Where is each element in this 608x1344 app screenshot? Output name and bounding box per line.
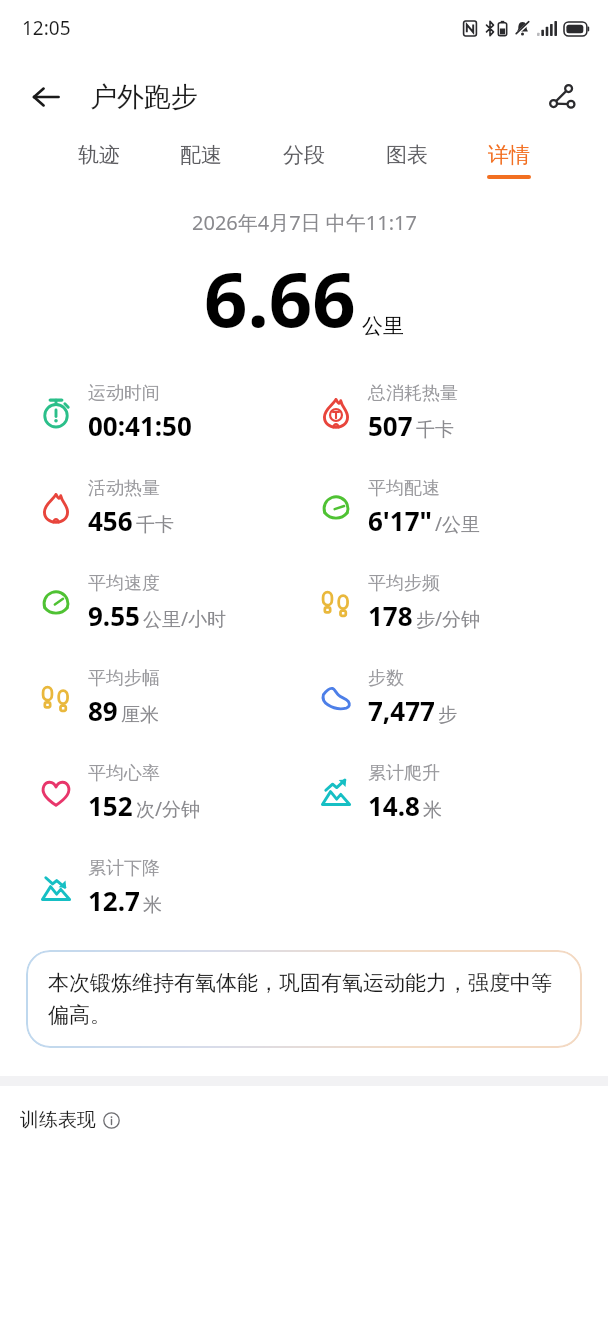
staticText: 户外跑步	[90, 80, 198, 114]
button[interactable]: Back	[26, 77, 66, 117]
staticText: 米	[423, 798, 442, 822]
staticText: 公里	[362, 313, 404, 339]
staticText: 89	[88, 693, 118, 728]
staticText: 178	[368, 598, 413, 633]
staticText: 千卡	[416, 418, 454, 442]
staticText: 配速	[180, 142, 222, 168]
button[interactable]: 平均步幅	[0, 665, 304, 730]
staticText: 9.55	[88, 598, 140, 633]
staticText: 累计爬升	[368, 762, 440, 785]
staticText: 本次锻炼维持有氧体能，巩固有氧运动能力，强度中等偏高。	[48, 970, 560, 1028]
staticText: 分段	[283, 142, 325, 168]
staticText: 12.7	[88, 883, 140, 918]
staticText: 平均步幅	[88, 667, 160, 690]
staticText: 平均配速	[368, 477, 440, 500]
staticText: 活动热量	[88, 477, 160, 500]
button[interactable]: 累计下降	[0, 855, 304, 920]
button[interactable]: 总消耗热量	[304, 380, 608, 445]
staticText: 14.8	[368, 788, 420, 823]
button[interactable]: 平均配速	[304, 475, 608, 540]
button[interactable]: 配速	[173, 138, 229, 183]
button[interactable]: 运动时间	[0, 380, 304, 445]
staticText: 6.66	[204, 246, 356, 350]
staticText: 平均心率	[88, 762, 160, 785]
staticText: 步数	[368, 667, 404, 690]
staticText: 平均步频	[368, 572, 440, 595]
staticText: 507	[368, 408, 413, 443]
staticText: 步	[438, 703, 457, 727]
staticText: 轨迹	[78, 142, 120, 168]
staticText: 2026年4月7日 中午11:17	[192, 209, 417, 236]
staticText: 详情	[488, 142, 530, 168]
staticText: 厘米	[121, 703, 159, 727]
button[interactable]: 步数	[304, 665, 608, 730]
button[interactable]: 活动热量	[0, 475, 304, 540]
button[interactable]: Information	[103, 1112, 120, 1129]
staticText: /公里	[435, 511, 481, 537]
staticText: 图表	[386, 142, 428, 168]
staticText: 训练表现	[20, 1108, 96, 1132]
button[interactable]: 平均速度	[0, 570, 304, 635]
staticText: 步/分钟	[416, 606, 481, 632]
button[interactable]: 本次锻炼维持有氧体能，巩固有氧运动能力，强度中等偏高。	[26, 950, 582, 1048]
staticText: 公里/小时	[143, 606, 227, 632]
staticText: 运动时间	[88, 382, 160, 405]
staticText: 00:41:50	[88, 408, 192, 443]
button[interactable]: 分段	[276, 138, 332, 183]
staticText: 7,477	[368, 693, 435, 728]
staticText: 152	[88, 788, 133, 823]
staticText: 12:05	[22, 15, 71, 41]
staticText: 总消耗热量	[368, 382, 458, 405]
button[interactable]: Share	[540, 75, 584, 119]
staticText: 456	[88, 503, 133, 538]
button[interactable]: 平均步频	[304, 570, 608, 635]
staticText: 6'17"	[368, 503, 432, 538]
staticText: 平均速度	[88, 572, 160, 595]
button[interactable]: 平均心率	[0, 760, 304, 825]
staticText: 次/分钟	[136, 796, 201, 822]
staticText: 米	[143, 893, 162, 917]
button[interactable]: 累计爬升	[304, 760, 608, 825]
staticText: 千卡	[136, 513, 174, 537]
button[interactable]: 轨迹	[71, 138, 127, 183]
button[interactable]: 详情	[481, 138, 537, 183]
button[interactable]: 图表	[379, 138, 435, 183]
staticText: 累计下降	[88, 857, 160, 880]
